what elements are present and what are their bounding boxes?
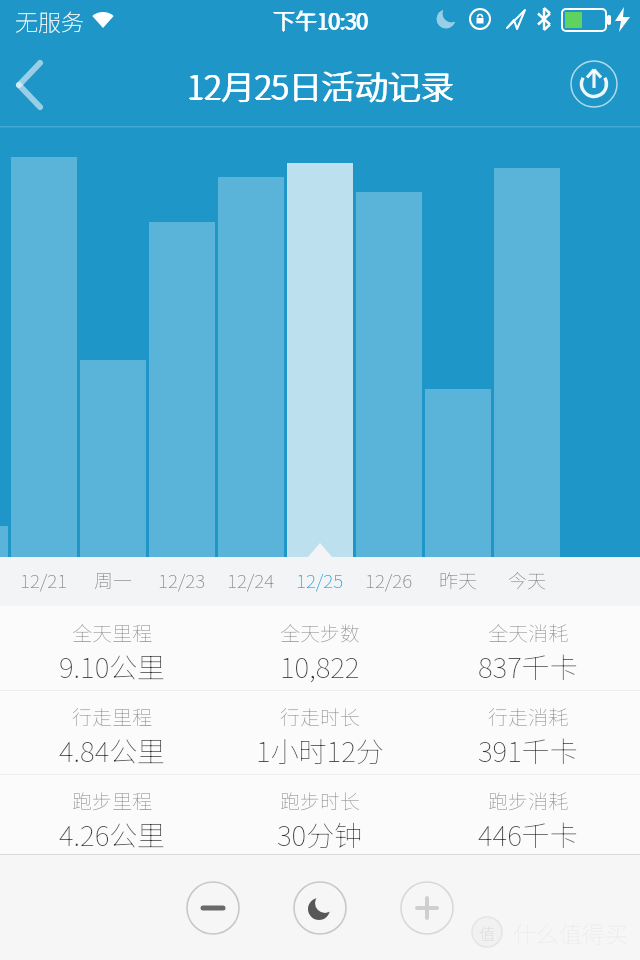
staticText: 下午10:30: [272, 3, 367, 35]
button[interactable]: [287, 557, 353, 606]
staticText: 10,822: [280, 646, 360, 687]
staticText: 12/26: [365, 566, 413, 594]
button[interactable]: [494, 557, 560, 606]
staticText: 12/24: [227, 566, 275, 594]
staticText: 跑步时长: [280, 786, 360, 815]
staticText: 12/25: [296, 566, 344, 594]
button[interactable]: [149, 557, 215, 606]
button[interactable]: [11, 557, 77, 606]
button[interactable]: [80, 557, 146, 606]
staticText: 下午10:30: [273, 3, 368, 35]
staticText: 30分钟: [277, 814, 363, 855]
staticText: 跑步里程: [72, 786, 152, 815]
staticText: 391千卡: [478, 730, 578, 771]
staticText: 12月25日活动记录: [187, 62, 454, 110]
staticText: 昨天: [439, 566, 478, 594]
staticText: 无服务: [15, 4, 84, 37]
staticText: 837千卡: [478, 646, 578, 687]
staticText: 全天消耗: [488, 618, 568, 647]
staticText: 12/23: [158, 566, 206, 594]
staticText: 12月25日活动记录: [186, 61, 453, 109]
staticText: 跑步消耗: [488, 786, 568, 815]
button[interactable]: [293, 881, 347, 935]
staticText: 下午10:30: [273, 4, 368, 36]
staticText: 下午10:30: [274, 3, 369, 35]
staticText: 12月25日活动记录: [188, 61, 455, 109]
staticText: 12月25日活动记录: [187, 61, 454, 109]
staticText: 周一: [94, 566, 133, 594]
button[interactable]: [356, 557, 422, 606]
button[interactable]: [218, 557, 284, 606]
button[interactable]: [400, 881, 454, 935]
staticText: 全天步数: [280, 618, 360, 647]
staticText: 1小时12分: [256, 730, 384, 771]
button[interactable]: [186, 881, 240, 935]
staticText: 值: [479, 921, 496, 944]
staticText: 行走时长: [280, 702, 360, 731]
staticText: 9.10公里: [59, 646, 166, 687]
staticText: 446千卡: [478, 814, 578, 855]
staticText: 12/21: [20, 566, 68, 594]
staticText: 4.84公里: [59, 730, 166, 771]
button[interactable]: [425, 557, 491, 606]
staticText: 行走消耗: [488, 702, 568, 731]
staticText: 4.26公里: [59, 814, 166, 855]
staticText: 今天: [508, 566, 547, 594]
staticText: 行走里程: [72, 702, 152, 731]
staticText: 全天里程: [72, 618, 152, 647]
button[interactable]: [566, 56, 622, 112]
button[interactable]: [8, 54, 56, 114]
